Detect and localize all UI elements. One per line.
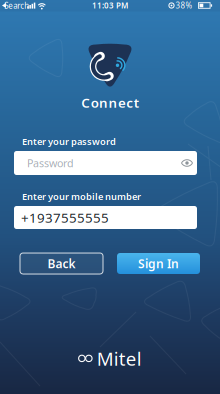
staticText: Search — [4, 0, 29, 11]
staticText: Back — [47, 255, 75, 271]
staticText: 11:03 PM — [92, 0, 128, 11]
staticText: Enter your password — [22, 135, 116, 148]
staticText: Sign In — [138, 255, 179, 271]
button[interactable]: Password — [14, 151, 197, 175]
button[interactable]: Sign In — [117, 253, 200, 274]
button[interactable]: +1937555555 — [14, 206, 197, 229]
staticText: Enter your mobile number — [22, 190, 141, 203]
staticText: 38% — [175, 0, 192, 11]
staticText: Password — [27, 156, 74, 170]
staticText: Connect — [81, 94, 139, 111]
button[interactable]: Back — [20, 253, 103, 274]
staticText: +1937555555 — [21, 209, 109, 226]
staticText: Mitel — [97, 346, 142, 371]
